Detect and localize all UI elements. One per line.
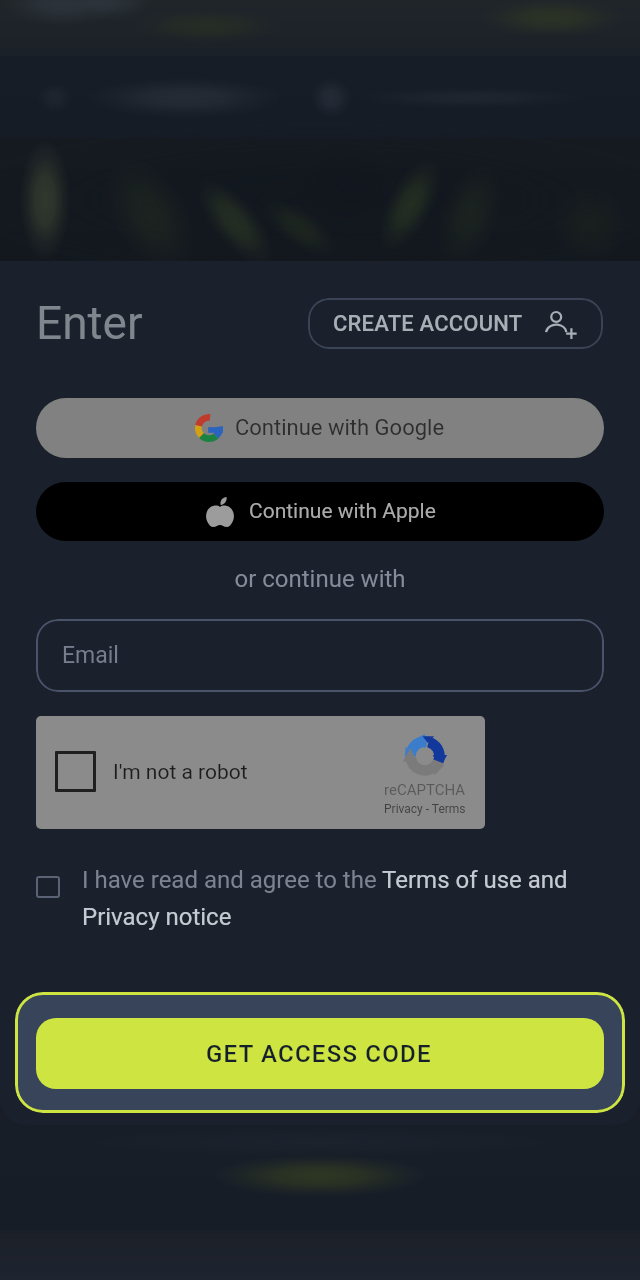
button[interactable]: CREATE ACCOUNT (308, 298, 603, 349)
button[interactable]: I have read and agree to the Terms of us… (36, 866, 604, 930)
staticText: or continue with (0, 565, 640, 593)
other: Create account (545, 308, 577, 340)
staticText: Enter (36, 296, 143, 350)
button[interactable]: GET ACCESS CODE (36, 1018, 604, 1089)
button[interactable]: Email (36, 619, 604, 692)
button[interactable]: Continue with Apple (36, 482, 604, 541)
staticText: I'm not a robot (113, 760, 248, 785)
staticText: Continue with Apple (249, 499, 436, 524)
staticText: Email (62, 642, 119, 669)
button[interactable]: I'm not a robot (36, 716, 485, 829)
staticText: Privacy - Terms (384, 802, 466, 816)
staticText: GET ACCESS CODE (206, 1040, 432, 1068)
button[interactable]: Continue with Google (36, 398, 604, 458)
staticText: reCAPTCHA (384, 781, 466, 799)
staticText: CREATE ACCOUNT (333, 311, 523, 337)
staticText: I have read and agree to the Terms of us… (82, 866, 604, 930)
staticText: Continue with Google (235, 415, 445, 441)
